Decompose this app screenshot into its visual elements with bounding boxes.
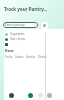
staticText: Snacks [26, 55, 36, 59]
button[interactable]: Drinks [38, 55, 49, 59]
staticText: Vegetables [10, 32, 25, 36]
button[interactable]: Fruits [5, 55, 15, 59]
staticText: Fruits [5, 55, 13, 59]
staticText: Grains [15, 55, 24, 59]
button[interactable]: Filter [41, 22, 48, 29]
button[interactable]: Grains [15, 55, 26, 59]
button[interactable]: Lists [38, 93, 43, 98]
staticText: Best [5, 48, 14, 53]
staticText: Search pantry [5, 23, 25, 27]
staticText: Dairy items [10, 37, 25, 41]
button[interactable]: Snacks [26, 55, 38, 59]
button[interactable]: Profile [47, 93, 52, 98]
staticText: Track your Pantry... [4, 6, 48, 12]
button[interactable]: Search pantry [3, 22, 38, 28]
staticText: Drinks [38, 55, 47, 59]
button[interactable]: Pantry [28, 93, 33, 98]
button[interactable]: Dairy items [4, 37, 64, 41]
button[interactable]: Vegetables [4, 32, 64, 36]
button[interactable]: Home [9, 93, 14, 98]
